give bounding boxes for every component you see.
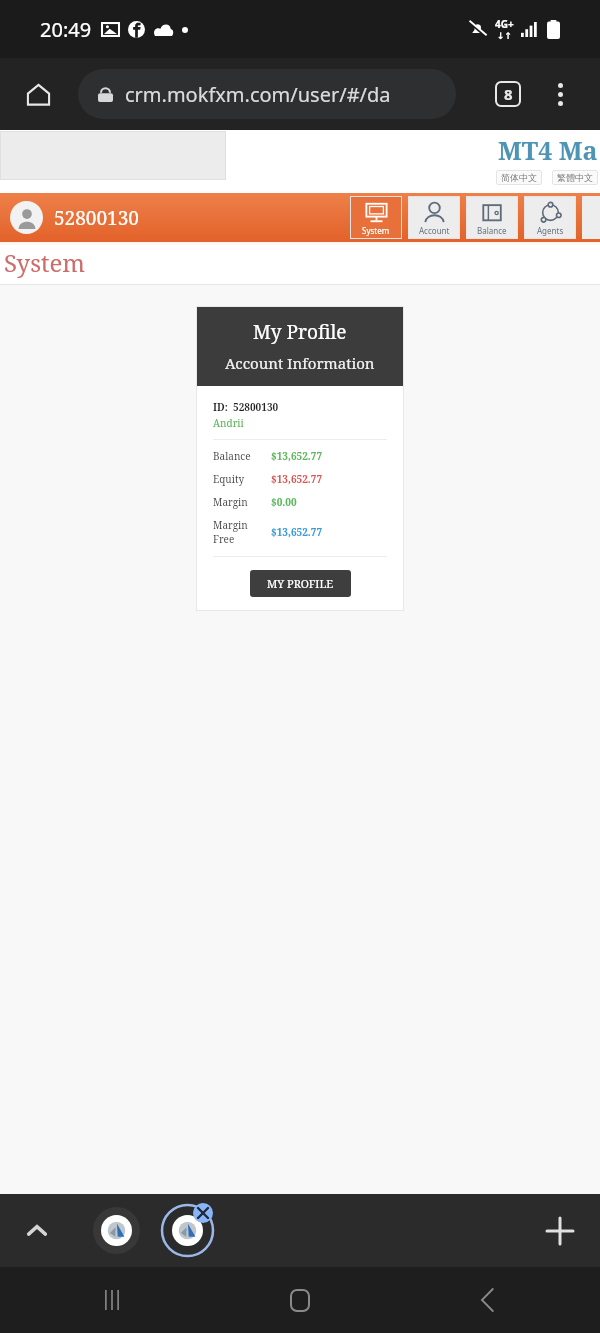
staticText: Margin	[213, 495, 248, 509]
staticText: $13,652.77	[271, 472, 323, 486]
staticText: 52800130	[54, 205, 139, 231]
staticText: Agents	[537, 225, 564, 236]
button[interactable]: Back	[466, 1278, 510, 1322]
staticText: MT4 Ma	[498, 133, 598, 167]
staticText: Margin Free	[213, 518, 271, 546]
staticText: $13,652.77	[271, 525, 323, 539]
button[interactable]: Recents	[90, 1278, 134, 1322]
button[interactable]: New tab	[538, 1209, 582, 1253]
staticText: MY PROFILE	[267, 576, 334, 591]
staticText: crm.mokfxm.com/user/#/da	[125, 81, 391, 108]
button[interactable]: 繁體中文	[552, 170, 598, 185]
staticText: Andrii	[213, 416, 244, 430]
button[interactable]: Current tab	[160, 1203, 215, 1258]
button[interactable]: MY PROFILE	[250, 570, 351, 597]
button[interactable]: Expand	[17, 1211, 57, 1251]
staticText: 20:49	[40, 16, 92, 43]
button[interactable]: Close tab	[193, 1203, 213, 1223]
button[interactable]: crm.mokfxm.com/user/#/da	[78, 69, 456, 119]
staticText: 4G+	[495, 17, 514, 31]
staticText: System	[4, 246, 85, 279]
staticText: System	[362, 225, 390, 236]
button[interactable]: 简体中文	[496, 170, 542, 185]
staticText: 简体中文	[501, 172, 537, 183]
staticText: 8	[504, 84, 513, 104]
button[interactable]: Agents	[524, 196, 576, 239]
button[interactable]: Home	[18, 74, 58, 114]
button[interactable]: More options	[540, 74, 580, 114]
staticText: ↓↑	[497, 31, 513, 41]
button[interactable]: 52800130	[10, 201, 139, 234]
staticText: $13,652.77	[271, 449, 323, 463]
staticText: Balance	[477, 225, 507, 236]
button[interactable]: Home	[278, 1278, 322, 1322]
staticText: $0.00	[271, 495, 297, 509]
staticText: Balance	[213, 449, 251, 463]
staticText: Account Information	[225, 353, 375, 373]
staticText: Account	[419, 225, 450, 236]
button[interactable]: Tab 1	[93, 1207, 140, 1254]
button[interactable]: Account	[408, 196, 460, 239]
staticText: My Profile	[253, 319, 347, 345]
button[interactable]: Balance	[466, 196, 518, 239]
staticText: Equity	[213, 472, 245, 486]
staticText: 繁體中文	[557, 172, 593, 183]
button[interactable]: System	[350, 196, 402, 239]
staticText: ID:	[213, 400, 228, 414]
staticText: 52800130	[233, 400, 279, 414]
button[interactable]: Tabs	[488, 74, 528, 114]
